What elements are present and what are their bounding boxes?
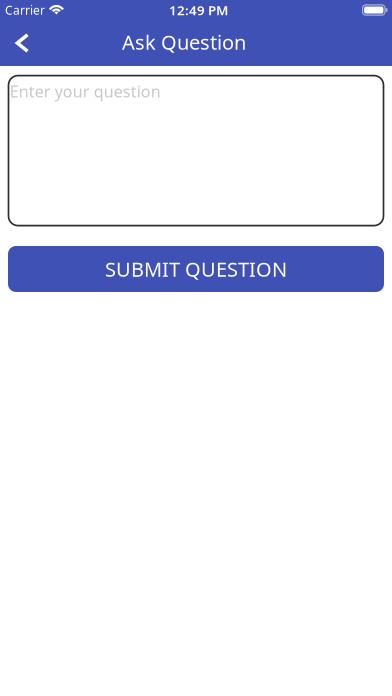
staticText: SUBMIT QUESTION	[105, 256, 287, 282]
staticText: Enter your question	[10, 81, 161, 102]
button[interactable]: Back	[0, 20, 43, 66]
button[interactable]: Enter your question	[8, 76, 383, 226]
staticText: Carrier	[5, 2, 45, 18]
staticText: Ask Question	[122, 29, 246, 55]
staticText: 12:49 PM	[169, 1, 228, 19]
button[interactable]: SUBMIT QUESTION	[8, 246, 384, 292]
